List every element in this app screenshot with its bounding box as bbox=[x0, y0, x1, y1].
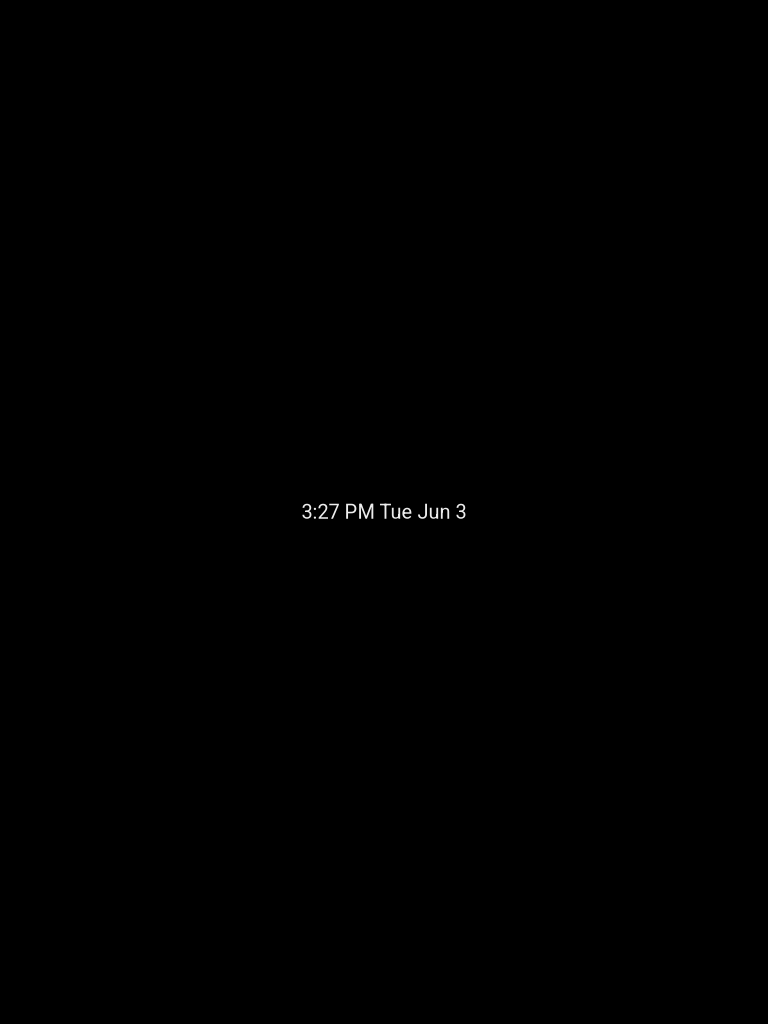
staticText: 3:27 PM Tue Jun 3 bbox=[301, 500, 466, 524]
